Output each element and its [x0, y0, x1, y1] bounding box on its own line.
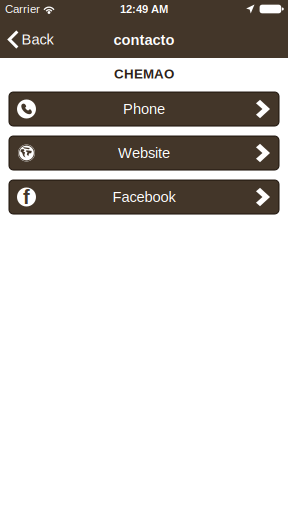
staticText: f — [23, 186, 30, 208]
staticText: contacto — [113, 32, 174, 48]
button[interactable]: f — [9, 180, 279, 214]
staticText: Carrier — [5, 3, 40, 15]
staticText: Website — [118, 145, 170, 161]
staticText: Back — [22, 31, 54, 48]
staticText: CHEMAO — [114, 67, 174, 81]
staticText: 12:49 AM — [120, 3, 168, 15]
button[interactable]: Website — [9, 136, 279, 170]
button[interactable]: Phone — [9, 92, 279, 126]
staticText: Facebook — [112, 189, 175, 205]
button[interactable]: Back — [0, 18, 62, 58]
staticText: Phone — [123, 101, 165, 117]
